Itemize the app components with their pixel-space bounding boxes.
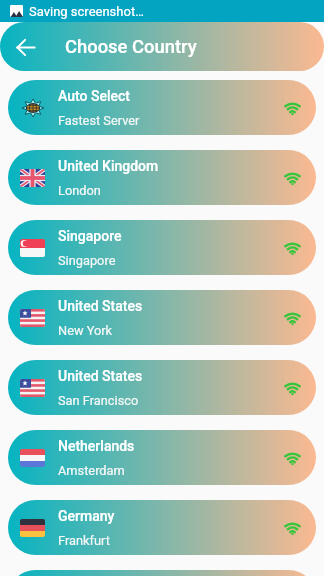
staticText: United States	[58, 368, 143, 384]
staticText: Netherlands	[58, 438, 135, 454]
staticText: Amsterdam	[58, 463, 125, 478]
button[interactable]: United States	[8, 360, 316, 415]
button[interactable]: Singapore	[8, 220, 316, 275]
button[interactable]: Back	[7, 29, 43, 65]
staticText: Fastest Server	[58, 113, 140, 128]
button[interactable]: United States	[8, 570, 316, 576]
staticText: London	[58, 183, 101, 198]
staticText: Saving screenshot…	[29, 4, 144, 19]
button[interactable]: United States	[8, 290, 316, 345]
staticText: Frankfurt	[58, 533, 110, 548]
staticText: Germany	[58, 508, 115, 524]
staticText: New York	[58, 323, 113, 338]
button[interactable]: United Kingdom	[8, 150, 316, 205]
staticText: Singapore	[58, 228, 122, 244]
staticText: United Kingdom	[58, 158, 159, 174]
button[interactable]: Netherlands	[8, 430, 316, 485]
staticText: San Francisco	[58, 393, 139, 408]
staticText: Choose Country	[65, 36, 197, 58]
button[interactable]: Auto Select	[8, 80, 316, 135]
staticText: Singapore	[58, 253, 116, 268]
button[interactable]: Germany	[8, 500, 316, 555]
staticText: Auto Select	[58, 88, 130, 104]
staticText: United States	[58, 298, 143, 314]
